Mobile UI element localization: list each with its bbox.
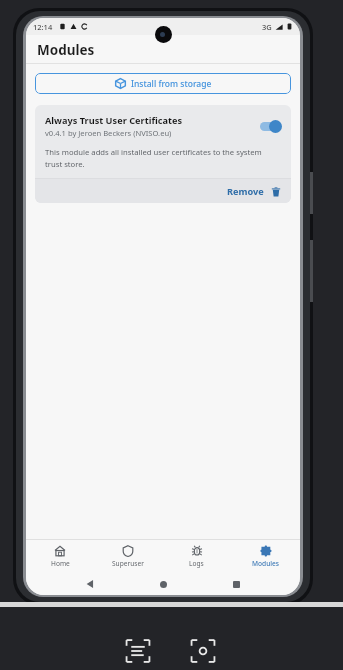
button[interactable]: Install from storage: [35, 73, 291, 94]
button[interactable]: Back: [81, 575, 99, 593]
button[interactable]: Superuser: [94, 540, 162, 573]
staticText: v0.4.1 by Jeroen Beckers (NVISO.eu): [45, 128, 172, 138]
button[interactable]: Text selection: [125, 638, 151, 664]
button[interactable]: Home: [154, 575, 172, 593]
staticText: This module adds all installed user cert…: [45, 147, 262, 157]
button[interactable]: Lens scan: [190, 638, 216, 664]
staticText: Remove: [227, 185, 264, 198]
staticText: Always Trust User Certificates: [45, 114, 183, 127]
staticText: 3G: [262, 22, 272, 32]
button[interactable]: Logs: [162, 540, 231, 573]
staticText: 12:14: [33, 22, 53, 32]
button[interactable]: Remove: [227, 185, 281, 198]
staticText: Install from storage: [131, 78, 212, 90]
button[interactable]: Modules: [231, 540, 300, 573]
button[interactable]: Home: [26, 540, 94, 573]
staticText: Home: [51, 559, 70, 568]
staticText: trust store.: [45, 159, 85, 169]
button[interactable]: Always Trust User Certificates: [35, 105, 291, 203]
button[interactable]: Recent apps: [227, 575, 245, 593]
staticText: Modules: [252, 559, 280, 568]
staticText: Superuser: [112, 559, 144, 568]
staticText: Modules: [37, 41, 95, 59]
button[interactable]: [258, 119, 282, 133]
staticText: Logs: [189, 559, 204, 568]
